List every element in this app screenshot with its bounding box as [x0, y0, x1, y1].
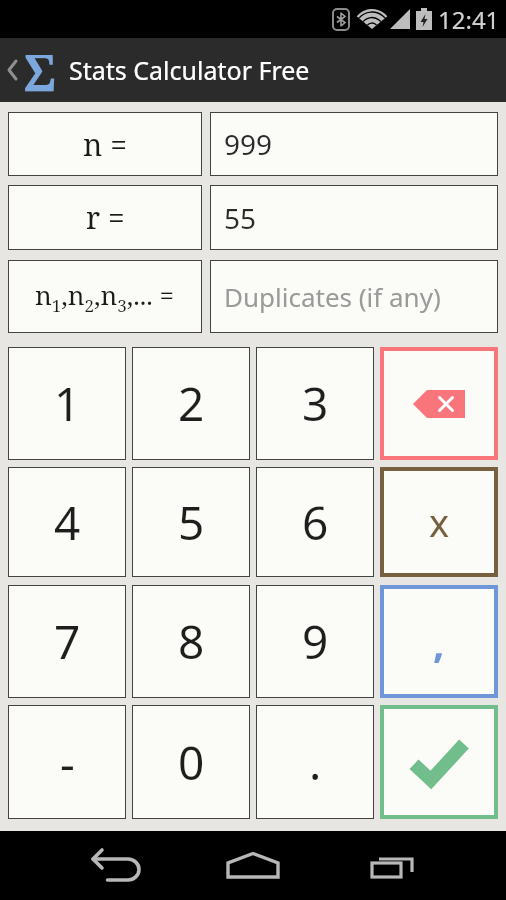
button[interactable]: r =: [8, 185, 202, 250]
button[interactable]: 999: [210, 112, 498, 176]
staticText: 55: [224, 199, 257, 237]
staticText: 12:41: [438, 3, 500, 36]
button[interactable]: n1,n2,n3,... =: [8, 260, 202, 333]
button[interactable]: [183, 831, 322, 900]
button[interactable]: .: [256, 705, 374, 819]
staticText: 3: [302, 372, 329, 435]
button[interactable]: 8: [132, 585, 250, 698]
staticText: ,: [433, 615, 445, 669]
button[interactable]: 9: [256, 585, 374, 698]
button[interactable]: -: [8, 705, 126, 819]
staticText: 2: [178, 372, 205, 435]
button[interactable]: Duplicates (if any): [210, 260, 498, 333]
button[interactable]: 0: [132, 705, 250, 819]
staticText: 9: [302, 610, 329, 673]
staticText: n =: [83, 124, 127, 165]
button[interactable]: 2: [132, 347, 250, 460]
staticText: Duplicates (if any): [224, 279, 441, 314]
staticText: r =: [86, 197, 125, 238]
staticText: 0: [178, 731, 205, 794]
staticText: 6: [302, 491, 329, 554]
staticText: 8: [178, 610, 205, 673]
button[interactable]: 6: [256, 467, 374, 577]
staticText: .: [309, 731, 322, 794]
staticText: 5: [178, 491, 205, 554]
button[interactable]: x: [380, 467, 498, 577]
button[interactable]: Σ: [0, 38, 506, 102]
button[interactable]: 1: [8, 347, 126, 460]
button[interactable]: [380, 705, 498, 819]
button[interactable]: 5: [132, 467, 250, 577]
staticText: 1: [54, 372, 81, 435]
button[interactable]: 4: [8, 467, 126, 577]
staticText: x: [429, 496, 450, 548]
staticText: 999: [224, 125, 273, 163]
staticText: 7: [54, 610, 81, 673]
button[interactable]: [380, 347, 498, 460]
button[interactable]: ,: [380, 585, 498, 698]
button[interactable]: 55: [210, 185, 498, 250]
staticText: Σ: [23, 38, 57, 102]
button[interactable]: 7: [8, 585, 126, 698]
button[interactable]: 3: [256, 347, 374, 460]
button[interactable]: [322, 831, 461, 900]
staticText: 4: [54, 491, 81, 554]
staticText: n1,n2,n3,... =: [35, 277, 175, 317]
button[interactable]: n =: [8, 112, 202, 176]
button[interactable]: [45, 831, 183, 900]
staticText: -: [60, 731, 75, 794]
staticText: Stats Calculator Free: [69, 53, 310, 87]
